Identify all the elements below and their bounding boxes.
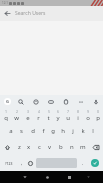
staticText: g <box>51 127 55 135</box>
staticText: , <box>21 160 23 167</box>
button[interactable]: ?123 <box>1 156 17 170</box>
staticText: 12:1 <box>2 1 8 5</box>
button[interactable]: 8 <box>73 108 83 123</box>
button[interactable]: s <box>16 123 27 139</box>
staticText: d <box>31 127 35 135</box>
staticText: G <box>6 99 9 104</box>
staticText: t <box>47 114 50 122</box>
staticText: f <box>42 127 45 135</box>
staticText: ?123 <box>5 161 13 166</box>
button[interactable]: x <box>24 139 34 155</box>
staticText: k <box>81 127 85 135</box>
staticText: q <box>4 114 8 122</box>
button[interactable]: . <box>78 156 87 170</box>
button[interactable]: z <box>14 139 24 155</box>
staticText: 1 <box>5 110 7 114</box>
staticText: 5 <box>48 110 50 114</box>
staticText: y <box>56 114 60 122</box>
button[interactable]: Hide keyboard <box>80 171 97 183</box>
button[interactable]: Shift <box>0 139 14 155</box>
staticText: 6 <box>57 110 59 114</box>
button[interactable]: 7 <box>63 108 73 123</box>
staticText: e <box>26 114 30 122</box>
button[interactable]: c <box>34 139 44 155</box>
staticText: Search Users <box>15 10 46 17</box>
button[interactable]: More options <box>73 95 88 108</box>
staticText: a <box>9 127 13 135</box>
staticText: m <box>80 143 86 151</box>
button[interactable]: k <box>78 123 88 139</box>
button[interactable]: Search <box>14 95 28 108</box>
staticText: c <box>38 143 41 151</box>
button[interactable]: a <box>5 123 16 139</box>
button[interactable]: 1 <box>0 108 11 123</box>
staticText: . <box>82 160 84 167</box>
button[interactable]: Stickers <box>28 95 43 108</box>
button[interactable]: 2 <box>11 108 22 123</box>
button[interactable]: l <box>88 123 98 139</box>
button[interactable]: m <box>77 139 88 155</box>
staticText: 8 <box>77 110 79 114</box>
staticText: w <box>14 114 19 122</box>
staticText: x <box>27 143 31 151</box>
staticText: h <box>61 127 65 135</box>
button[interactable]: , <box>17 156 26 170</box>
button[interactable]: j <box>68 123 78 139</box>
button[interactable]: GIF <box>43 95 58 108</box>
staticText: 4 <box>38 110 40 114</box>
button[interactable]: Gboard <box>0 95 14 108</box>
staticText: b <box>59 143 63 151</box>
button[interactable]: 4 <box>33 108 43 123</box>
staticText: o <box>86 114 90 122</box>
staticText: v <box>48 143 52 151</box>
staticText: 9 <box>87 110 89 114</box>
button[interactable]: 5 <box>43 108 53 123</box>
button[interactable]: Recent apps <box>58 171 80 183</box>
button[interactable]: f <box>38 123 48 139</box>
button[interactable]: 6 <box>53 108 63 123</box>
button[interactable]: v <box>44 139 55 155</box>
staticText: n <box>70 143 74 151</box>
button[interactable]: Backspace <box>88 139 103 155</box>
button[interactable]: Voice input <box>88 95 103 108</box>
staticText: i <box>77 114 79 122</box>
staticText: 7 <box>67 110 69 114</box>
button[interactable]: d <box>27 123 38 139</box>
button[interactable]: Clipboard <box>58 95 73 108</box>
button[interactable]: 0 <box>93 108 103 123</box>
staticText: 2 <box>16 110 18 114</box>
button[interactable]: Search Users <box>15 6 103 21</box>
button[interactable]: 9 <box>83 108 93 123</box>
staticText: r <box>37 114 40 122</box>
staticText: s <box>20 127 23 135</box>
staticText: p <box>96 114 100 122</box>
button[interactable]: Home <box>36 171 58 183</box>
button[interactable]: Emoji <box>26 156 35 170</box>
button[interactable]: b <box>55 139 66 155</box>
staticText: u <box>66 114 70 122</box>
button[interactable]: 3 <box>22 108 33 123</box>
button[interactable]: Back <box>14 171 36 183</box>
staticText: 3 <box>27 110 29 114</box>
button[interactable]: Enter <box>87 156 102 170</box>
button[interactable]: Back <box>0 6 15 21</box>
button[interactable]: h <box>58 123 68 139</box>
staticText: l <box>92 127 94 135</box>
staticText: j <box>72 127 74 135</box>
button[interactable]: n <box>66 139 77 155</box>
staticText: 0 <box>97 110 99 114</box>
button[interactable]: g <box>48 123 58 139</box>
staticText: z <box>18 143 21 151</box>
